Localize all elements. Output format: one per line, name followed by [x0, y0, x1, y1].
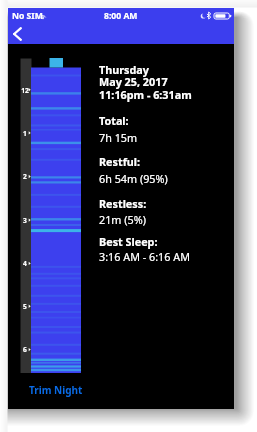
staticText: Restful:	[99, 154, 141, 169]
staticText: Total:	[99, 113, 129, 128]
staticText: 3:16 AM - 6:16 AM	[99, 249, 190, 264]
staticText: 1	[23, 129, 27, 138]
staticText: 6h 54m (95%)	[99, 171, 168, 186]
staticText: 11:16pm - 6:31am	[99, 87, 192, 102]
staticText: 3	[23, 216, 27, 225]
staticText: May 25, 2017	[99, 74, 168, 89]
staticText: Trim Night	[29, 383, 83, 397]
staticText: Restless:	[99, 196, 147, 211]
button[interactable]: Back	[9, 23, 31, 44]
staticText: 21m (5%)	[99, 212, 146, 227]
staticText: 5	[23, 302, 27, 311]
staticText: 7h 15m	[99, 130, 138, 145]
staticText: 8:00 AM	[104, 10, 138, 22]
staticText: No SIM	[12, 10, 43, 22]
staticText: 12	[21, 86, 29, 95]
button[interactable]: Trim Night	[28, 381, 84, 399]
staticText: 6	[23, 345, 27, 354]
staticText: Best Sleep:	[99, 234, 158, 249]
staticText: 4	[23, 259, 27, 268]
staticText: Thursday	[99, 62, 149, 77]
staticText: 2	[23, 172, 27, 181]
